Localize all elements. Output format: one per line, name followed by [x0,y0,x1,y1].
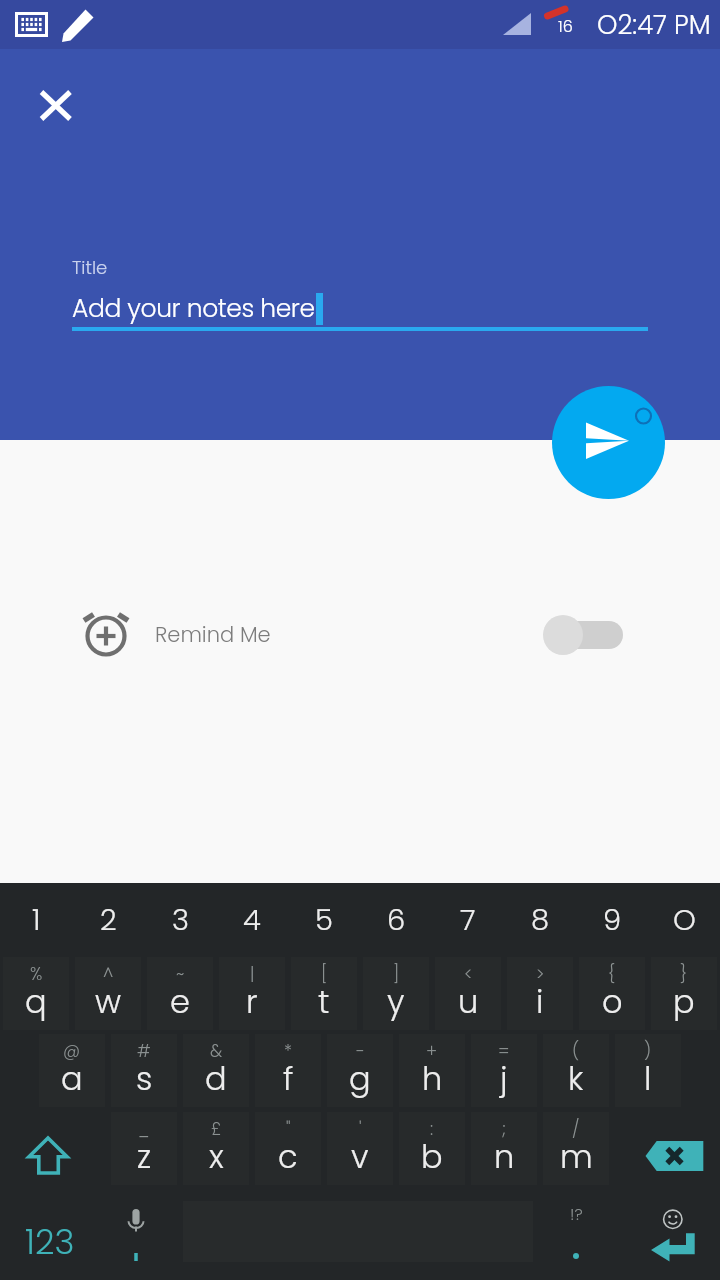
staticText: O [673,900,696,941]
button[interactable]: Enter [612,1185,720,1280]
button[interactable]: _ [111,1112,177,1185]
button[interactable]: ) [615,1034,681,1107]
staticText: O2:47 PM [597,7,711,43]
staticText: ( [572,1039,580,1063]
staticText: l [644,1056,652,1101]
staticText: v [351,1134,369,1179]
staticText: & [210,1039,223,1063]
button[interactable]: ^ [75,957,141,1030]
button[interactable]: * [255,1034,321,1107]
button[interactable]: ' [327,1112,393,1185]
staticText: j [500,1056,508,1101]
staticText: - [356,1039,365,1063]
staticText: 5 [315,900,333,941]
button[interactable]: < [435,957,501,1030]
staticText: ; [502,1117,506,1141]
button[interactable]: Voice input [108,1185,182,1280]
button[interactable]: 3 [144,883,216,957]
staticText: < [464,962,473,986]
button[interactable]: 5 [288,883,360,957]
button[interactable]: [ [291,957,357,1030]
staticText: 123 [25,1218,75,1266]
staticText: 4 [243,900,261,941]
staticText: 7 [460,900,476,941]
staticText: Add your notes here [72,291,315,326]
staticText: ) [644,1039,652,1063]
button[interactable]: ; [471,1112,537,1185]
staticText: w [95,979,122,1024]
button[interactable]: ~ [147,957,213,1030]
staticText: [ [321,962,328,986]
staticText: # [137,1039,151,1063]
staticText: 6 [387,900,406,941]
button[interactable]: - [327,1034,393,1107]
button[interactable]: : [399,1112,465,1185]
staticText: m [560,1134,593,1179]
staticText: u [458,979,479,1024]
button[interactable]: = [471,1034,537,1107]
button[interactable]: 8 [504,883,576,957]
staticText: f [283,1056,294,1101]
button[interactable]: # [111,1034,177,1107]
staticText: ~ [176,962,185,986]
staticText: ^ [103,962,114,986]
staticText: p [673,979,695,1024]
staticText: ] [393,962,400,986]
button[interactable]: @ [39,1034,105,1107]
button[interactable]: Edit [60,8,96,44]
button[interactable]: 9 [576,883,648,957]
staticText: n [494,1134,515,1179]
button[interactable]: " [255,1112,321,1185]
button[interactable]: > [507,957,573,1030]
button[interactable]: 6 [360,883,432,957]
button[interactable]: Backspace [612,1112,720,1185]
staticText: z [137,1134,152,1179]
staticText: q [25,979,47,1024]
button[interactable]: Shift [0,1112,108,1185]
button[interactable]: O [648,883,720,957]
button[interactable]: { [579,957,645,1030]
staticText: h [422,1056,443,1101]
staticText: : [430,1117,434,1141]
staticText: { [608,962,616,986]
button[interactable]: 2 [72,883,144,957]
staticText: Title [72,255,108,280]
staticText: o [602,979,623,1024]
button[interactable]: ( [543,1034,609,1107]
button[interactable]: Keyboard [15,12,48,37]
button[interactable]: / [543,1112,609,1185]
staticText: 9 [603,900,622,941]
button[interactable]: | [219,957,285,1030]
staticText: x [209,1134,224,1179]
button[interactable]: 4 [216,883,288,957]
staticText: % [30,962,43,986]
staticText: i [536,979,544,1024]
staticText: = [498,1039,510,1063]
button[interactable]: !? [540,1185,612,1280]
button[interactable]: £ [183,1112,249,1185]
staticText: 3 [172,900,189,941]
button[interactable]: Remind Me [0,592,720,676]
staticText: !? [570,1203,583,1225]
button[interactable]: Remind Me toggle [542,614,626,656]
staticText: 8 [531,900,550,941]
staticText: " [286,1117,291,1141]
button[interactable]: Send [552,386,665,499]
button[interactable]: Close [28,78,84,134]
button[interactable]: } [651,957,717,1030]
staticText: g [349,1056,371,1101]
staticText: a [61,1056,83,1101]
button[interactable]: 123 [0,1185,108,1280]
staticText: + [426,1039,438,1063]
staticText: > [536,962,545,986]
staticText: _ [138,1117,150,1141]
button[interactable]: ] [363,957,429,1030]
button[interactable]: 7 [432,883,504,957]
button[interactable]: + [399,1034,465,1107]
button[interactable]: 1 [0,883,72,957]
button[interactable]: & [183,1034,249,1107]
staticText: 1 [32,900,41,941]
button[interactable]: % [3,957,69,1030]
staticText: b [421,1134,443,1179]
